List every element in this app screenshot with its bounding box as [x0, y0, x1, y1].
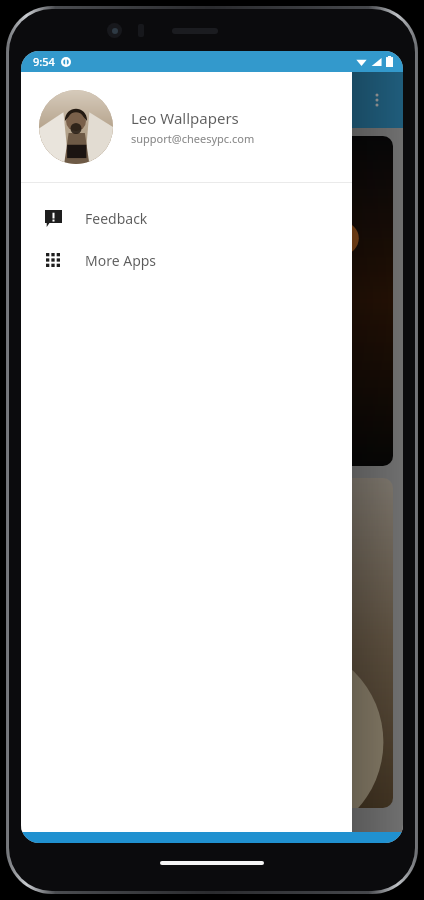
button[interactable]: Leo Wallpapers	[21, 72, 352, 182]
staticText: support@cheesypc.com	[131, 131, 255, 146]
staticText: Feedback	[85, 209, 148, 228]
staticText: 9:54	[33, 54, 55, 69]
staticText: More Apps	[85, 251, 157, 270]
button[interactable]: Feedback	[21, 197, 352, 239]
button[interactable]: Lion King Story	[31, 478, 393, 808]
button[interactable]: CINEMATOGRAPHY	[31, 136, 393, 466]
staticText: Leo Master	[81, 89, 172, 112]
button[interactable]: More Apps	[21, 239, 352, 281]
staticText: Leo Wallpapers	[131, 108, 239, 128]
button[interactable]: More options	[357, 80, 397, 120]
